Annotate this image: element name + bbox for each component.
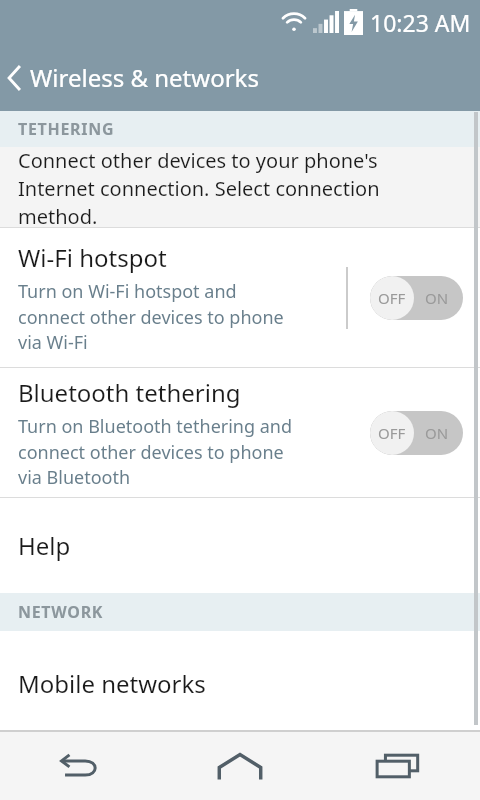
button[interactable]: Home (160, 732, 320, 800)
button[interactable]: Wireless & networks (0, 44, 480, 111)
button[interactable]: Help (0, 498, 480, 593)
staticText: 10:23 AM (370, 7, 471, 38)
staticText: OFF (378, 288, 406, 308)
button[interactable]: Recent apps (320, 732, 480, 800)
button[interactable]: Back (0, 732, 160, 800)
button[interactable]: Wi-Fi hotspot (0, 228, 480, 367)
staticText: OFF (378, 423, 406, 443)
staticText: Turn on Bluetooth tethering and connect … (18, 414, 293, 489)
staticText: Connect other devices to your phone's In… (18, 147, 458, 227)
button[interactable]: Toggle off (370, 276, 463, 320)
staticText: NETWORK (18, 601, 104, 623)
button[interactable]: Mobile networks (0, 631, 480, 730)
button[interactable]: Toggle off (370, 411, 463, 455)
staticText: ON (425, 423, 449, 443)
staticText: TETHERING (18, 118, 115, 140)
staticText: Mobile networks (18, 667, 206, 700)
staticText: Wireless & networks (30, 61, 259, 94)
button[interactable]: Bluetooth tethering (0, 368, 480, 497)
staticText: Turn on Wi-Fi hotspot and connect other … (18, 279, 284, 354)
staticText: Bluetooth tethering (18, 376, 241, 409)
staticText: Wi-Fi hotspot (18, 241, 167, 274)
staticText: Help (18, 529, 71, 562)
staticText: ON (425, 288, 449, 308)
